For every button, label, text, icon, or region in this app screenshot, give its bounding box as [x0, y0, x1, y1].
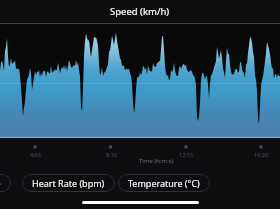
staticText: 8:10	[106, 151, 117, 158]
staticText: 16:20	[254, 151, 269, 158]
staticText: Time (h:m:s)	[139, 157, 174, 165]
staticText: Pace (min/km)	[0, 177, 1, 189]
staticText: 4:03	[30, 151, 41, 158]
button[interactable]: Temperature (°C)	[118, 174, 210, 192]
staticText: Heart Rate (bpm)	[32, 177, 105, 189]
staticText: Speed (km/h)	[110, 5, 170, 18]
staticText: Temperature (°C)	[128, 177, 200, 189]
button[interactable]: Pace (min/km)	[0, 174, 11, 192]
staticText: 12:15	[179, 151, 194, 158]
button[interactable]: Heart Rate (bpm)	[22, 174, 115, 192]
